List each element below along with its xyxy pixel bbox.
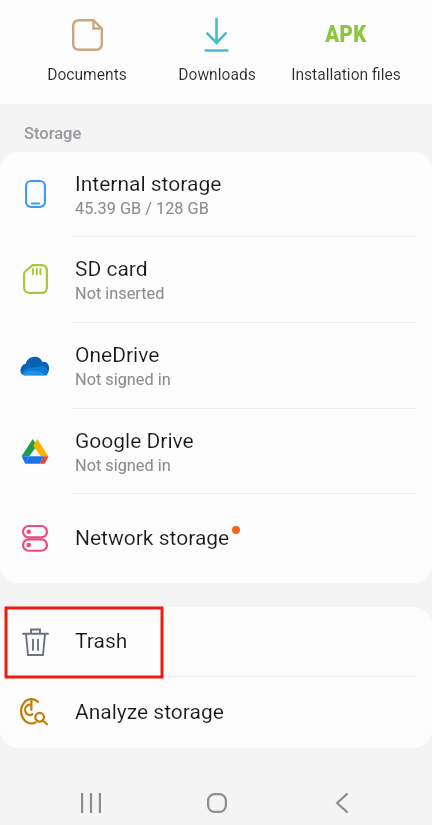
button[interactable]: Analyze storage xyxy=(0,676,432,748)
staticText: SD card xyxy=(75,257,148,282)
staticText: Not signed in xyxy=(75,456,171,475)
button[interactable]: Home xyxy=(154,793,279,813)
button[interactable]: Documents xyxy=(22,0,152,104)
staticText: APK xyxy=(325,20,367,48)
staticText: Documents xyxy=(47,66,127,84)
staticText: Downloads xyxy=(178,66,256,84)
staticText: Not inserted xyxy=(75,284,165,303)
button[interactable]: Back xyxy=(279,793,404,813)
staticText: Network storage xyxy=(75,526,230,551)
staticText: Analyze storage xyxy=(75,700,224,725)
staticText: Installation files xyxy=(291,66,401,84)
button[interactable]: APK xyxy=(281,0,410,104)
staticText: Storage xyxy=(24,124,82,143)
button[interactable]: Google Drive xyxy=(0,408,432,493)
button[interactable]: Recent apps xyxy=(28,793,154,813)
staticText: Not signed in xyxy=(75,370,171,389)
button[interactable]: Internal storage xyxy=(0,152,432,236)
button[interactable]: SD card xyxy=(0,236,432,322)
button[interactable]: Downloads xyxy=(152,0,281,104)
staticText: 45.39 GB / 128 GB xyxy=(75,199,209,218)
button[interactable]: Trash xyxy=(0,607,432,676)
button[interactable]: Network storage xyxy=(0,493,432,583)
staticText: Internal storage xyxy=(75,172,222,197)
staticText: OneDrive xyxy=(75,343,160,368)
button[interactable]: OneDrive xyxy=(0,322,432,408)
staticText: Trash xyxy=(75,629,128,654)
staticText: Google Drive xyxy=(75,429,194,454)
